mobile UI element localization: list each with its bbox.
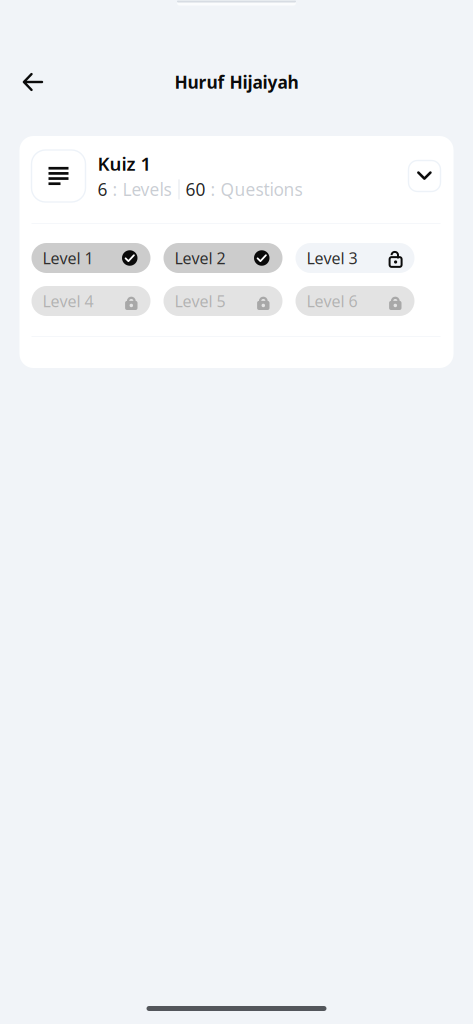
staticText: Level 2 — [174, 247, 225, 269]
staticText: : Levels — [107, 178, 171, 201]
button[interactable]: Level 5 — [163, 286, 282, 316]
staticText: 60 — [185, 178, 205, 201]
staticText: Huruf Hijaiyah — [174, 70, 298, 93]
staticText: : Questions — [205, 178, 302, 201]
button[interactable]: Back — [10, 60, 56, 104]
staticText: Level 3 — [306, 247, 357, 269]
staticText: Level 6 — [306, 290, 357, 312]
button[interactable]: Level 6 — [295, 286, 414, 316]
staticText: Level 4 — [42, 290, 93, 312]
button[interactable]: Level 1 — [31, 243, 150, 273]
button[interactable]: Level 4 — [31, 286, 150, 316]
button[interactable]: Expand quiz — [408, 160, 440, 191]
staticText: Kuiz 1 — [97, 151, 151, 176]
staticText: 6 — [97, 178, 107, 201]
button[interactable]: Level 3 — [295, 243, 414, 273]
staticText: Level 5 — [174, 290, 225, 312]
button[interactable]: Level 2 — [163, 243, 282, 273]
staticText: Level 1 — [42, 247, 93, 269]
